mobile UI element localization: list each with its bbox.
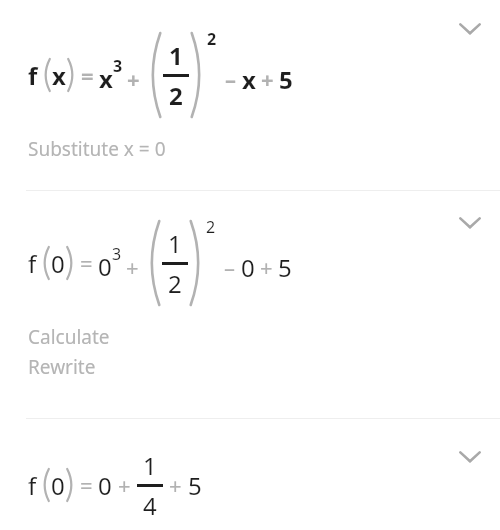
staticText: + (127, 64, 140, 94)
staticText: x (52, 59, 66, 92)
staticText: = (80, 248, 93, 278)
staticText: 2 (168, 267, 182, 300)
staticText: 3 (113, 55, 123, 77)
staticText: + (260, 252, 273, 282)
staticText: f (28, 247, 37, 280)
staticText: 1 (168, 227, 182, 260)
staticText: = (81, 60, 94, 90)
staticText: f (28, 469, 37, 502)
staticText: + (261, 64, 274, 94)
button[interactable]: Collapse step 2 (448, 200, 492, 244)
staticText: 4 (143, 489, 157, 522)
button[interactable]: Collapse step 1 (0, 0, 500, 190)
staticText: x (99, 62, 113, 95)
staticText: 1 (169, 39, 183, 72)
staticText: 5 (188, 469, 202, 502)
staticText: Calculate (28, 324, 110, 350)
staticText: 1 (143, 449, 157, 482)
staticText: 0 (51, 469, 65, 502)
staticText: 2 (206, 216, 216, 238)
staticText: 2 (169, 79, 183, 112)
staticText: 5 (279, 63, 293, 96)
staticText: 2 (207, 28, 217, 50)
staticText: – (225, 64, 237, 94)
staticText: 5 (278, 251, 292, 284)
staticText: – (224, 252, 236, 282)
staticText: + (169, 470, 182, 500)
staticText: = (80, 470, 93, 500)
staticText: x (242, 63, 256, 96)
button[interactable]: Collapse step 1 (448, 6, 492, 50)
staticText: 3 (112, 243, 122, 265)
staticText: + (126, 252, 139, 282)
staticText: 0 (98, 469, 112, 502)
staticText: 0 (98, 250, 112, 283)
staticText: + (118, 470, 131, 500)
staticText: 0 (241, 251, 255, 284)
staticText: f (28, 59, 38, 92)
button[interactable]: Collapse step 3 (0, 419, 500, 530)
staticText: Substitute x = 0 (28, 136, 166, 162)
staticText: Rewrite (28, 354, 96, 380)
button[interactable]: Collapse step 3 (448, 434, 492, 478)
staticText: 0 (51, 247, 65, 280)
button[interactable]: Collapse step 2 (0, 191, 500, 418)
